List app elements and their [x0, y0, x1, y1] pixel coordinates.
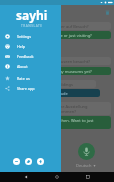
- button[interactable]: Messenger: [13, 158, 20, 165]
- button[interactable]: Ich bin von hier oder auf Besuch?: [4, 22, 111, 30]
- button[interactable]: Home: [52, 172, 62, 182]
- button[interactable]: Back: [21, 172, 31, 182]
- button[interactable]: Are you around here or just visiting?: [4, 31, 111, 39]
- button[interactable]: Delete conversation: [103, 8, 112, 17]
- button[interactable]: Feedback: [0, 51, 61, 61]
- button[interactable]: Share app: [0, 83, 61, 93]
- button[interactable]: Deutsch ▾: [76, 163, 96, 168]
- staticText: Der Familie auf eine Ausstellung Mochten…: [27, 104, 88, 114]
- staticText: About: [17, 64, 28, 69]
- button[interactable]: Der Familie auf eine Ausstellung Mochten…: [4, 102, 111, 115]
- staticText: the wonderful buildings: [28, 82, 73, 87]
- staticText: Schone Gebaude: [36, 91, 68, 96]
- staticText: Ich bin von hier oder auf Besuch?: [26, 24, 89, 29]
- staticText: Haben Sie schon Museen besucht?: [25, 59, 90, 64]
- staticText: Ich mochte tanzen gehen. Want to just go…: [21, 118, 94, 128]
- staticText: Help: [17, 44, 26, 49]
- button[interactable]: Twitter: [25, 158, 32, 165]
- button[interactable]: Record voice: [78, 143, 95, 160]
- button[interactable]: Settings: [0, 31, 61, 41]
- button[interactable]: Have you been to any museums yet?: [4, 67, 111, 75]
- staticText: Rate us: [17, 76, 30, 81]
- button[interactable]: Haben Sie schon Museen besucht?: [4, 57, 111, 65]
- staticText: sayhi: [16, 7, 48, 23]
- staticText: Have you been to any museums yet?: [23, 69, 92, 74]
- button[interactable]: the wonderful buildings: [4, 80, 96, 88]
- button[interactable]: About: [0, 61, 61, 71]
- staticText: Feedback: [17, 54, 34, 59]
- staticText: Share app: [17, 86, 35, 91]
- button[interactable]: Schone Gebaude: [4, 89, 100, 97]
- staticText: Are you around here or just visiting?: [24, 33, 92, 38]
- button[interactable]: Facebook: [37, 158, 44, 165]
- button[interactable]: Help: [0, 41, 61, 51]
- button[interactable]: Rate us: [0, 73, 61, 83]
- staticText: TRANSLATE: [21, 24, 43, 28]
- button[interactable]: Recent apps: [83, 172, 93, 182]
- button[interactable]: Ich mochte tanzen gehen. Want to just go…: [4, 116, 111, 129]
- staticText: Deutsch ▾: [76, 163, 96, 168]
- staticText: Settings: [17, 34, 32, 39]
